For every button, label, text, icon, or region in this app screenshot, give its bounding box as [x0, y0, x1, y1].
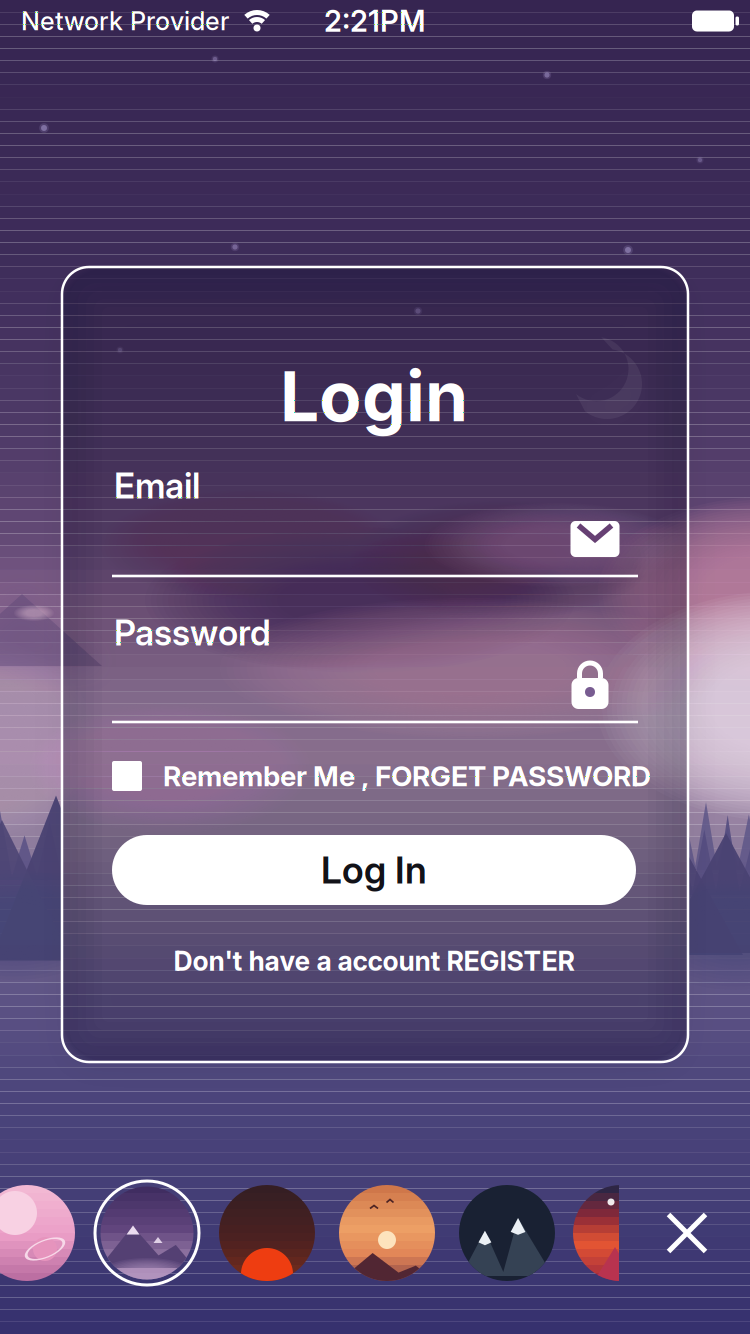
button[interactable]: Sunset wallpaper: [339, 1185, 435, 1281]
button[interactable]: Password: [112, 648, 638, 726]
button[interactable]: Purple mountains wallpaper: [95, 1181, 199, 1285]
button[interactable]: Pink wallpaper: [0, 1185, 75, 1281]
button[interactable]: Remember Me , FORGET PASSWORD: [112, 759, 750, 792]
button[interactable]: Close: [668, 1214, 705, 1251]
staticText: Log In: [321, 848, 427, 892]
staticText: Remember Me , FORGET PASSWORD: [163, 759, 651, 792]
staticText: 2:21PM: [324, 4, 426, 38]
staticText: Email: [114, 466, 200, 506]
staticText: Network Provider: [21, 6, 229, 36]
button[interactable]: Red sun wallpaper: [219, 1185, 315, 1281]
button[interactable]: Email: [112, 505, 638, 581]
staticText: Login: [280, 355, 468, 437]
button[interactable]: Night mountains wallpaper: [459, 1185, 555, 1281]
button[interactable]: Red wallpaper: [573, 1185, 619, 1281]
staticText: Password: [114, 613, 271, 653]
button[interactable]: Don't have a account REGISTER: [173, 945, 574, 977]
staticText: Don't have a account REGISTER: [173, 945, 574, 977]
button[interactable]: Log In: [112, 835, 636, 905]
